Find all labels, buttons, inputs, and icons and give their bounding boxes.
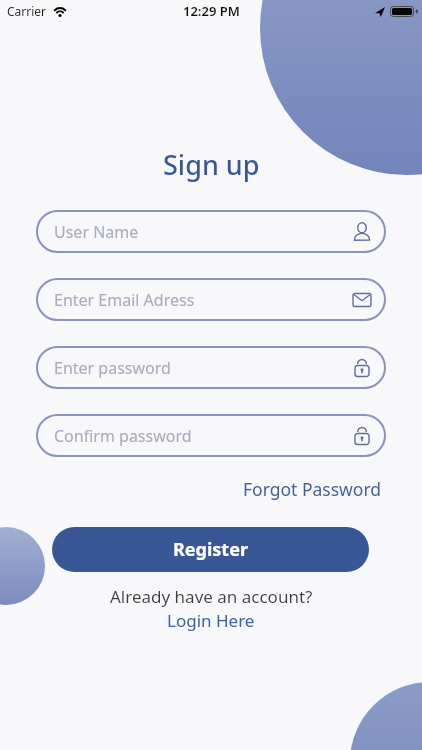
staticText: Sign up	[163, 146, 260, 183]
staticText: 12:29 PM	[183, 2, 240, 20]
staticText: Enter password	[54, 357, 171, 379]
staticText: Enter Email Adress	[54, 289, 195, 311]
staticText: Carrier	[7, 3, 47, 19]
button[interactable]: Enter password	[36, 346, 386, 389]
staticText: Login Here	[167, 609, 255, 632]
staticText: Confirm password	[54, 425, 192, 447]
staticText: Already have an account?	[110, 585, 313, 608]
staticText: Forgot Password	[243, 477, 382, 501]
button[interactable]: Login Here	[167, 609, 255, 632]
staticText: User Name	[54, 221, 139, 243]
button[interactable]: Enter Email Adress	[36, 278, 386, 321]
staticText: Register	[173, 537, 248, 562]
button[interactable]: Forgot Password	[243, 477, 382, 501]
button[interactable]: User Name	[36, 210, 386, 253]
button[interactable]: Register	[52, 527, 369, 572]
button[interactable]: Confirm password	[36, 414, 386, 457]
